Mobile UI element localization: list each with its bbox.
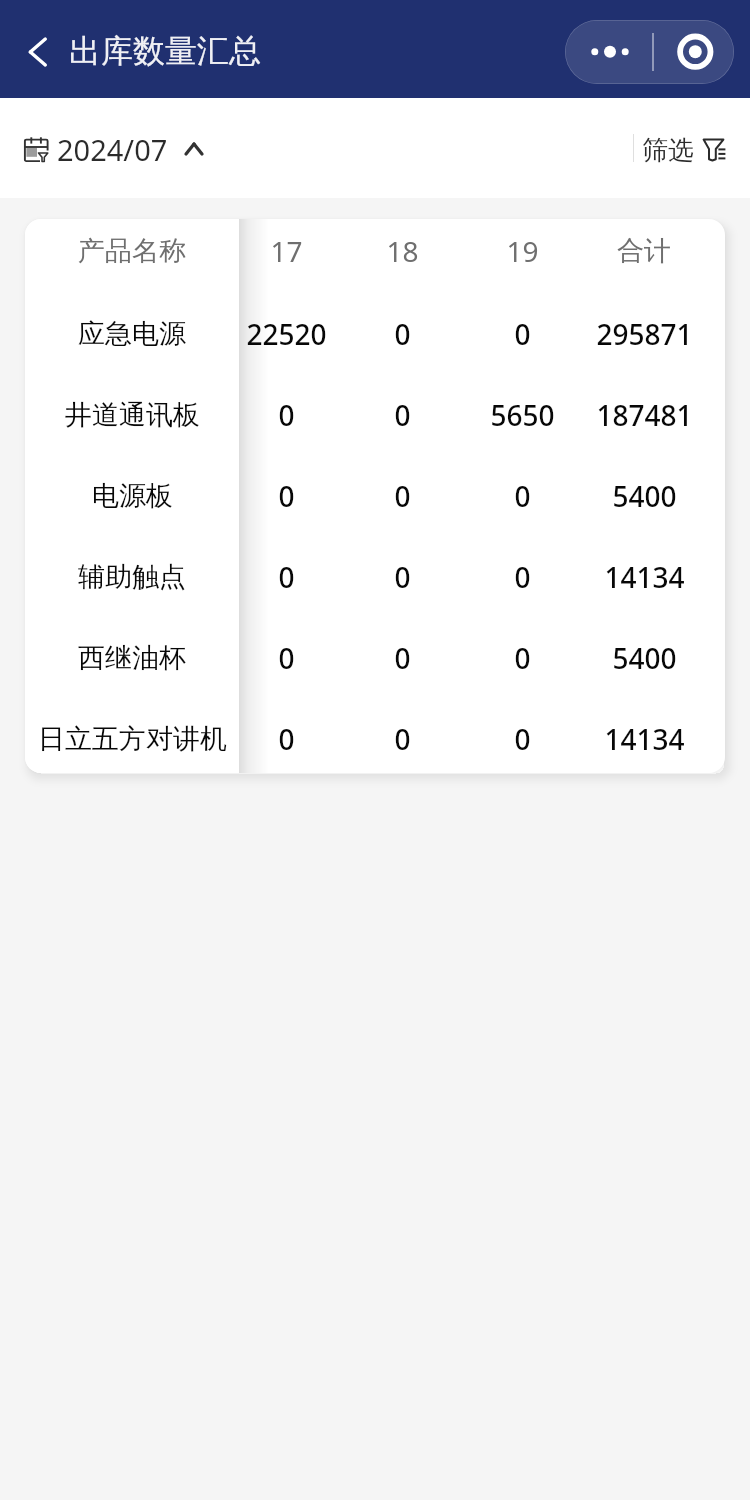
staticText: 14134 <box>604 558 685 596</box>
staticText: 西继油杯 <box>78 641 186 675</box>
button[interactable]: 0 <box>221 452 351 533</box>
staticText: 14134 <box>604 720 685 758</box>
staticText: 0 <box>394 396 411 434</box>
button[interactable]: 5400 <box>579 452 709 533</box>
staticText: 筛选 <box>642 134 694 167</box>
button[interactable]: More options <box>565 20 652 84</box>
button[interactable]: 0 <box>457 695 587 773</box>
button[interactable]: 0 <box>337 614 467 695</box>
button[interactable]: 295871 <box>579 290 709 371</box>
staticText: 电源板 <box>92 479 173 513</box>
staticText: 295871 <box>596 315 693 353</box>
staticText: 0 <box>514 558 531 596</box>
button[interactable]: 0 <box>457 533 587 614</box>
staticText: 产品名称 <box>78 234 186 268</box>
staticText: 5650 <box>490 396 555 434</box>
button[interactable]: 5400 <box>579 614 709 695</box>
button[interactable]: 电源板 <box>25 452 239 533</box>
button[interactable]: 产品名称 <box>25 219 239 290</box>
button[interactable]: 0 <box>221 533 351 614</box>
button[interactable]: 17 <box>221 219 351 290</box>
button[interactable]: 0 <box>457 290 587 371</box>
button[interactable]: 0 <box>337 533 467 614</box>
staticText: 应急电源 <box>78 317 186 351</box>
button[interactable]: 0 <box>221 371 351 452</box>
button[interactable]: 0 <box>221 614 351 695</box>
staticText: 0 <box>514 720 531 758</box>
staticText: 0 <box>514 477 531 515</box>
staticText: 22520 <box>246 315 327 353</box>
button[interactable]: 0 <box>337 371 467 452</box>
staticText: 出库数量汇总 <box>69 31 261 71</box>
button[interactable]: 0 <box>337 695 467 773</box>
button[interactable]: 日立五方对讲机 <box>25 695 239 773</box>
button[interactable]: 辅助触点 <box>25 533 239 614</box>
button[interactable]: 18 <box>337 219 467 290</box>
staticText: 井道通讯板 <box>65 398 200 432</box>
button[interactable]: 0 <box>337 290 467 371</box>
staticText: 17 <box>270 232 303 270</box>
button[interactable]: 0 <box>337 452 467 533</box>
staticText: 0 <box>394 558 411 596</box>
staticText: 0 <box>278 396 295 434</box>
button[interactable]: Close mini program <box>655 20 734 84</box>
staticText: 19 <box>506 232 539 270</box>
staticText: 5400 <box>612 639 677 677</box>
button[interactable]: 19 <box>457 219 587 290</box>
staticText: 0 <box>394 639 411 677</box>
staticText: 辅助触点 <box>78 560 186 594</box>
button[interactable]: 0 <box>457 452 587 533</box>
button[interactable]: Back <box>14 29 60 75</box>
button[interactable]: 5650 <box>457 371 587 452</box>
button[interactable]: 合计 <box>579 219 709 290</box>
button[interactable]: 应急电源 <box>25 290 239 371</box>
staticText: 0 <box>514 315 531 353</box>
staticText: 0 <box>278 639 295 677</box>
button[interactable]: 14134 <box>579 695 709 773</box>
staticText: 合计 <box>617 234 671 268</box>
button[interactable]: 14134 <box>579 533 709 614</box>
button[interactable]: 井道通讯板 <box>25 371 239 452</box>
staticText: 18 <box>386 232 419 270</box>
button[interactable]: 2024/07 <box>12 118 214 180</box>
staticText: 0 <box>394 477 411 515</box>
staticText: 187481 <box>596 396 693 434</box>
staticText: 0 <box>278 477 295 515</box>
staticText: 0 <box>394 720 411 758</box>
staticText: 0 <box>278 720 295 758</box>
button[interactable]: 22520 <box>221 290 351 371</box>
button[interactable]: 西继油杯 <box>25 614 239 695</box>
staticText: 0 <box>514 639 531 677</box>
staticText: 2024/07 <box>57 130 168 169</box>
staticText: 0 <box>394 315 411 353</box>
button[interactable]: 0 <box>221 695 351 773</box>
staticText: 日立五方对讲机 <box>38 722 227 756</box>
staticText: 0 <box>278 558 295 596</box>
button[interactable]: 187481 <box>579 371 709 452</box>
button[interactable]: 0 <box>457 614 587 695</box>
button[interactable]: 筛选 <box>642 119 726 181</box>
staticText: 5400 <box>612 477 677 515</box>
